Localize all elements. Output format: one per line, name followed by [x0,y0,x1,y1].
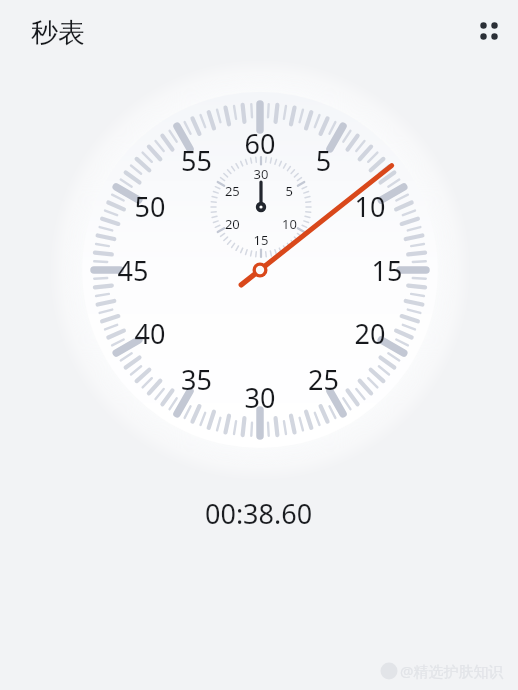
button[interactable]: More options [452,0,518,66]
button[interactable] [0,0,160,66]
